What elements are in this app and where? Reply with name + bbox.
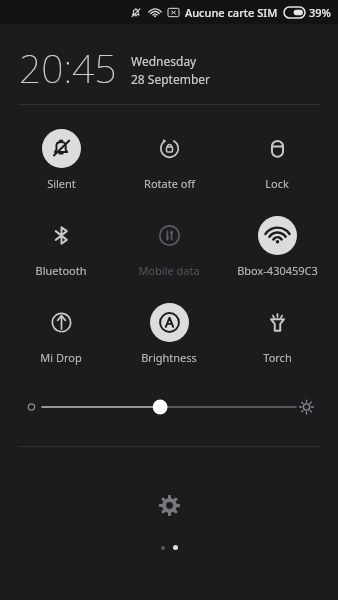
button[interactable]: Settings	[148, 484, 190, 526]
button[interactable]: Lock	[224, 127, 330, 193]
staticText: Lock	[265, 176, 289, 191]
staticText: Rotate off	[144, 176, 195, 191]
button[interactable]: Brightness slider	[28, 394, 310, 420]
staticText: Silent	[47, 176, 76, 191]
button[interactable]: Bbox-430459C3	[224, 214, 330, 280]
staticText: Bluetooth	[35, 263, 87, 278]
button[interactable]: Rotate off	[116, 127, 222, 193]
staticText: Brightness	[141, 350, 197, 365]
button[interactable]: Torch	[224, 301, 330, 367]
staticText: Aucune carte SIM	[185, 5, 278, 20]
staticText: 28 September	[131, 71, 211, 87]
staticText: 20:45	[19, 41, 117, 94]
staticText: 39%	[309, 5, 331, 20]
button[interactable]: Brightness	[116, 301, 222, 367]
button[interactable]: Mi Drop	[8, 301, 114, 367]
button[interactable]: Bluetooth	[8, 214, 114, 280]
staticText: Mi Drop	[40, 350, 82, 365]
staticText: Mobile data	[138, 263, 200, 278]
staticText: Bbox-430459C3	[237, 263, 318, 278]
staticText: Wednesday	[131, 53, 197, 69]
button[interactable]: Silent	[8, 127, 114, 193]
staticText: Torch	[263, 350, 292, 365]
button[interactable]: Mobile data	[116, 214, 222, 280]
